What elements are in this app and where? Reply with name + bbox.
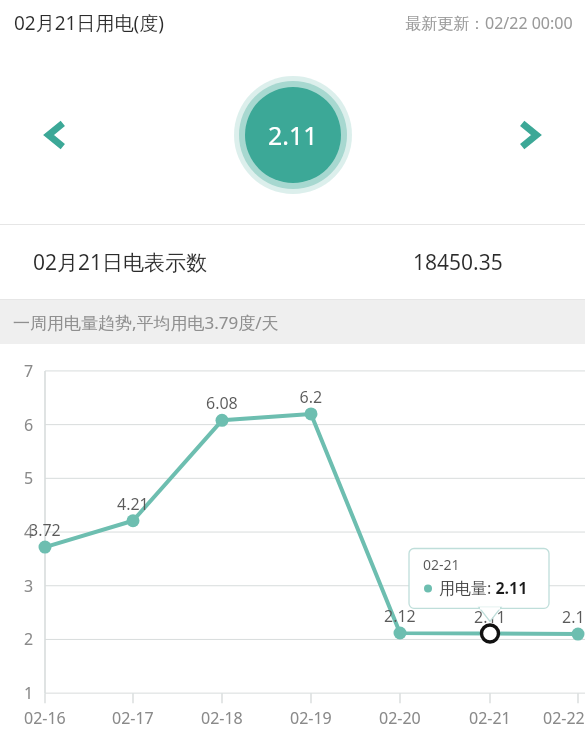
button[interactable]: 2.11	[230, 72, 356, 198]
staticText: 最新更新：02/22 00:00	[405, 12, 573, 34]
staticText: 2.11	[268, 118, 318, 152]
staticText: 一周用电量趋势,平均用电3.79度/天	[13, 311, 279, 334]
button[interactable]: 02月21日电表示数	[0, 225, 585, 299]
button[interactable]: Next day	[501, 107, 557, 163]
staticText: 02月21日用电(度)	[14, 10, 164, 36]
staticText: 18450.35	[413, 248, 503, 277]
staticText: 02月21日电表示数	[33, 248, 208, 277]
button[interactable]: Previous day	[28, 107, 84, 163]
